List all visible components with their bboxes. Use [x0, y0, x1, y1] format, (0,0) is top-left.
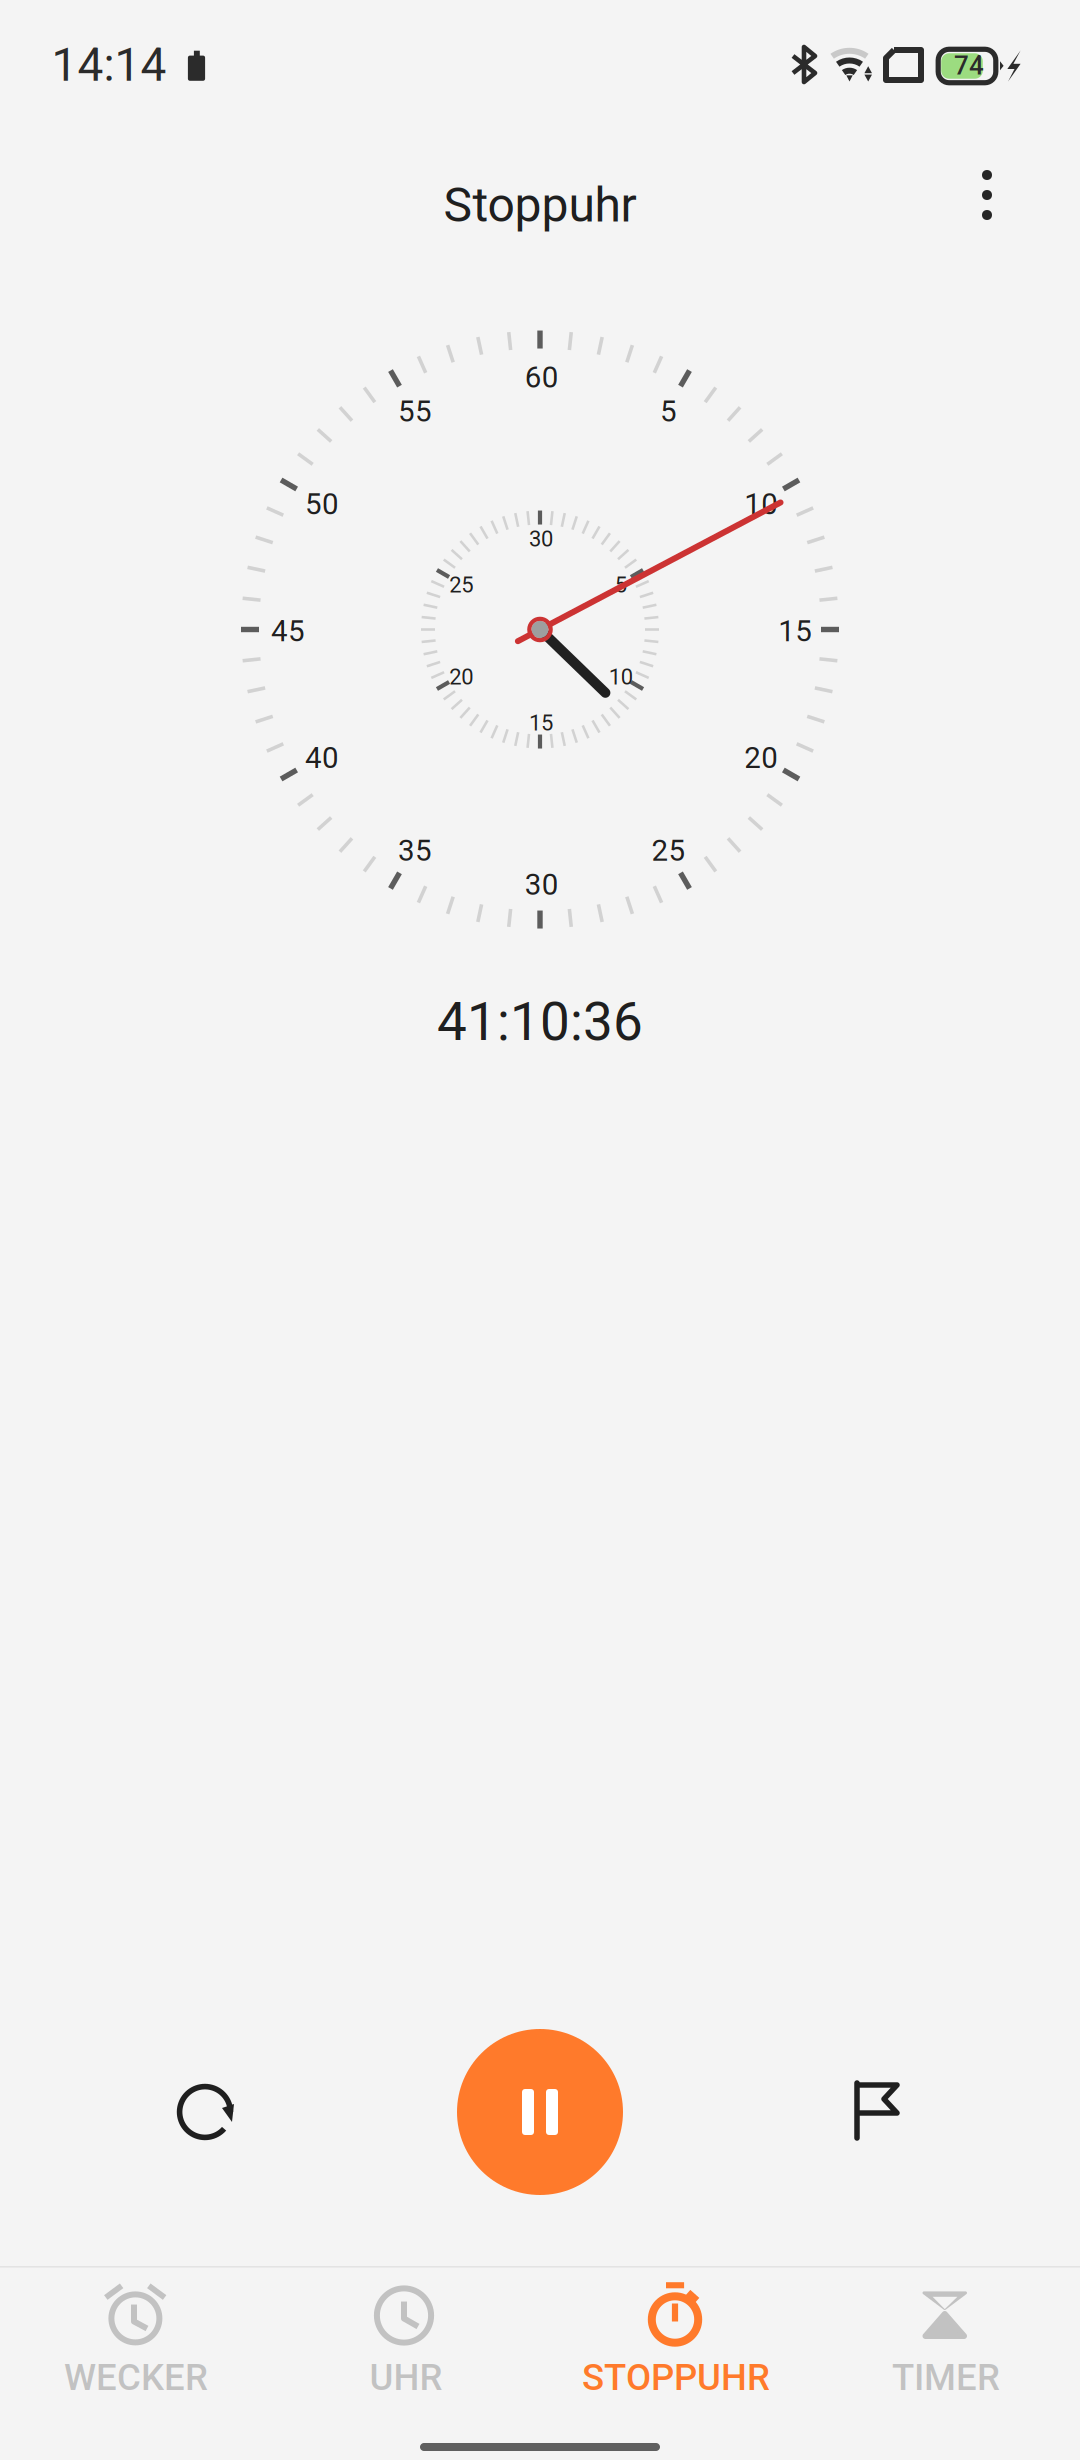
staticText: 5 — [660, 394, 677, 429]
button[interactable]: UHR — [270, 2266, 540, 2459]
staticText: UHR — [369, 2356, 442, 2399]
button[interactable]: Pause — [457, 2029, 623, 2195]
staticText: 15 — [529, 710, 553, 736]
staticText: STOPPUHR — [582, 2356, 770, 2399]
button[interactable]: STOPPUHR — [540, 2266, 810, 2459]
staticText: 41:10:36 — [437, 991, 643, 1053]
button[interactable]: Reset — [140, 2047, 270, 2177]
staticText: 10 — [609, 664, 633, 690]
staticText: 45 — [271, 614, 305, 648]
button[interactable]: Lap — [810, 2045, 940, 2175]
staticText: 30 — [525, 867, 559, 902]
staticText: 40 — [305, 741, 339, 775]
staticText: 30 — [529, 526, 553, 552]
staticText: 20 — [449, 664, 473, 690]
staticText: 50 — [305, 487, 339, 522]
staticText: 15 — [778, 614, 812, 648]
button[interactable]: More options — [932, 140, 1042, 250]
staticText: 25 — [651, 833, 685, 868]
staticText: 35 — [398, 833, 432, 868]
staticText: 25 — [449, 572, 473, 598]
staticText: 74 — [954, 50, 984, 81]
staticText: 55 — [398, 394, 432, 429]
button[interactable]: TIMER — [810, 2266, 1080, 2459]
button[interactable]: WECKER — [0, 2266, 270, 2459]
staticText: TIMER — [892, 2356, 1000, 2399]
staticText: 60 — [525, 360, 559, 395]
staticText: 14:14 — [51, 38, 166, 92]
staticText: WECKER — [64, 2356, 208, 2399]
staticText: 5 — [615, 572, 627, 598]
staticText: 20 — [744, 741, 778, 775]
staticText: 10 — [744, 487, 778, 522]
staticText: Stoppuhr — [443, 177, 636, 233]
